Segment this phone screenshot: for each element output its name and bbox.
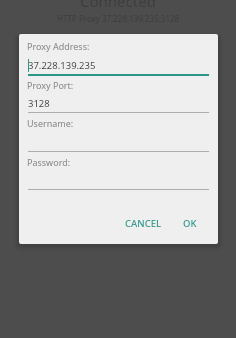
staticText: Connected	[80, 0, 156, 11]
staticText: OK	[183, 217, 197, 230]
staticText: 37.228.139.235	[28, 59, 96, 72]
button[interactable]	[27, 154, 210, 191]
button[interactable]	[27, 77, 210, 114]
staticText: Password:	[27, 156, 71, 168]
button[interactable]: CANCEL	[119, 212, 168, 235]
staticText: Username:	[27, 117, 74, 129]
staticText: HTTP Proxy 37.228.139.235:3128	[57, 13, 180, 24]
staticText: CANCEL	[125, 217, 162, 230]
staticText: 3128	[28, 97, 50, 110]
button[interactable]	[27, 115, 210, 153]
staticText: Proxy Port:	[27, 79, 74, 91]
button[interactable]	[27, 38, 210, 76]
button[interactable]: OK	[177, 212, 203, 235]
staticText: Proxy Address:	[27, 40, 90, 52]
